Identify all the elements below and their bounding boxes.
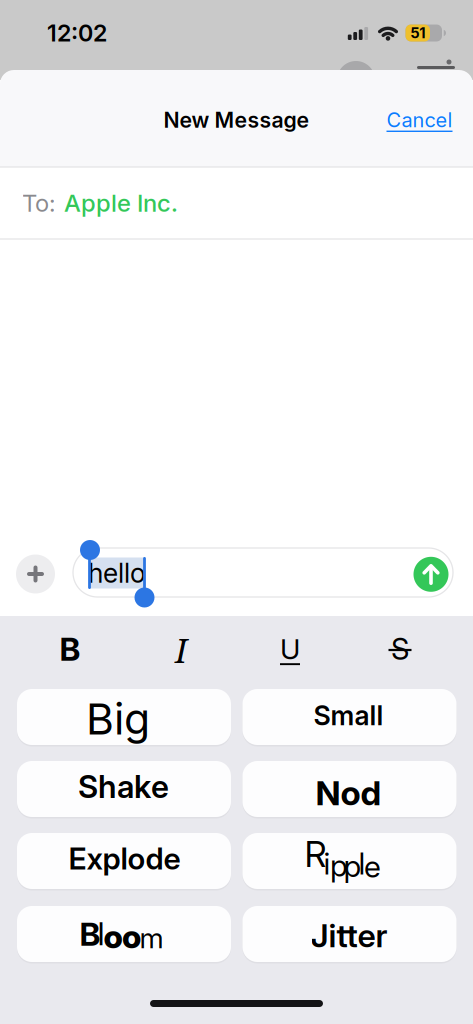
staticText: Apple Inc. [64, 188, 178, 217]
staticText: Big [86, 693, 150, 745]
staticText: New Message [163, 107, 309, 133]
staticText: I [175, 627, 187, 673]
staticText: To: [22, 188, 56, 217]
staticText: p [330, 847, 348, 884]
staticText: Nod [315, 772, 381, 813]
staticText: 51 [410, 24, 425, 42]
staticText: hello [88, 557, 146, 589]
staticText: R [304, 833, 326, 875]
staticText: Explode [68, 840, 180, 877]
staticText: Cancel [386, 108, 452, 132]
staticText: U [280, 632, 300, 666]
staticText: l [358, 845, 365, 882]
staticText: 12:02 [47, 19, 107, 47]
staticText: Jitter [310, 916, 387, 955]
staticText: Small [313, 699, 383, 732]
staticText: B [79, 915, 100, 953]
staticText: e [364, 848, 381, 885]
staticText: m [139, 921, 163, 955]
staticText: o [122, 917, 141, 956]
staticText: i [323, 845, 330, 882]
staticText: S [391, 631, 409, 667]
staticText: p [343, 848, 361, 884]
staticText: l [97, 914, 104, 953]
staticText: Shake [78, 767, 169, 805]
staticText: o [103, 917, 122, 956]
staticText: B [59, 630, 80, 668]
